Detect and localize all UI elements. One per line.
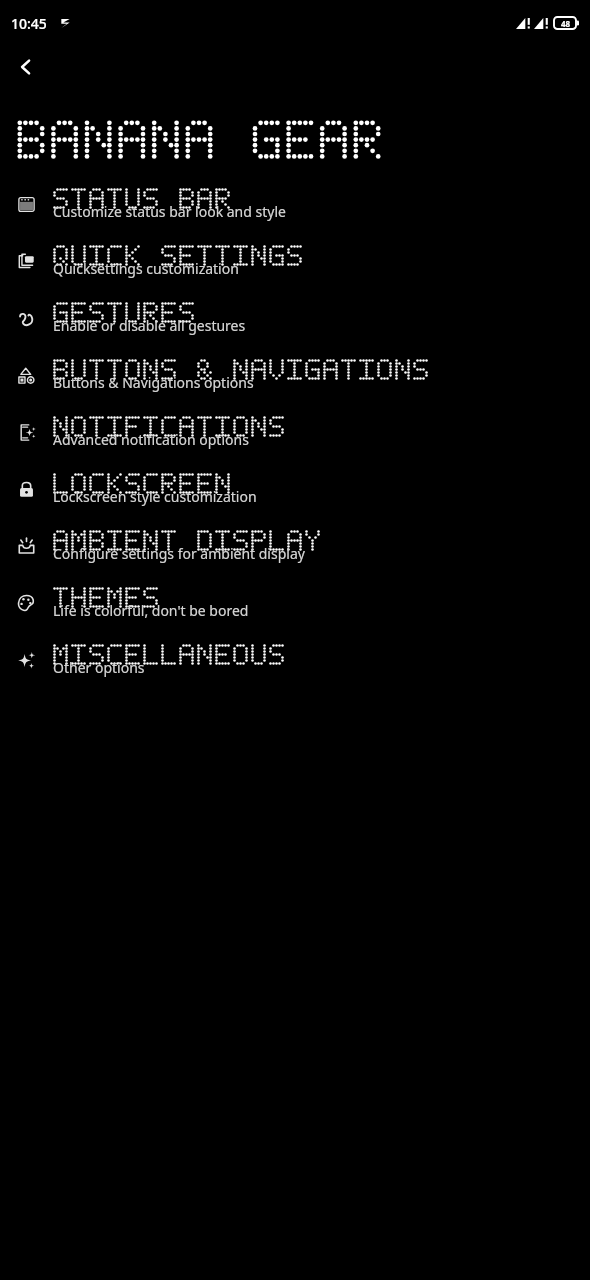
staticText: Buttons & Navigations options — [53, 373, 254, 392]
staticText: Enable or disable all gestures — [53, 316, 246, 335]
button[interactable]: Life is colorful, don't be bored — [0, 575, 590, 632]
staticText: Life is colorful, don't be bored — [53, 601, 249, 620]
staticText: 10:45 — [11, 14, 47, 33]
button[interactable]: Quicksettings customization — [0, 233, 590, 290]
button[interactable]: Lockscreen style customization — [0, 461, 590, 518]
staticText: Quicksettings customization — [53, 259, 239, 278]
staticText: Advanced notification options — [53, 430, 249, 449]
staticText: 48 — [561, 18, 571, 29]
button[interactable]: Buttons & Navigations options — [0, 347, 590, 404]
staticText: Configure settings for ambient display — [53, 544, 305, 563]
button[interactable]: Customize status bar look and style — [0, 176, 590, 233]
button[interactable]: Configure settings for ambient display — [0, 518, 590, 575]
staticText: Customize status bar look and style — [53, 202, 286, 221]
button[interactable]: Other options — [0, 632, 590, 689]
button[interactable]: Enable or disable all gestures — [0, 290, 590, 347]
staticText: Lockscreen style customization — [53, 487, 257, 506]
button[interactable]: Advanced notification options — [0, 404, 590, 461]
staticText: Other options — [53, 658, 145, 677]
button[interactable]: Back — [0, 46, 52, 88]
